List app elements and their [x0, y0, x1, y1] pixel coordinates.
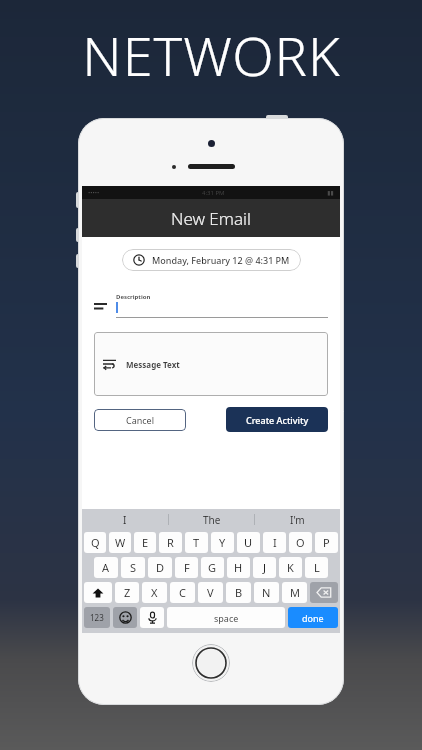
button[interactable]: Message Text	[94, 332, 328, 396]
staticText: S	[130, 560, 137, 575]
staticText: T	[193, 535, 200, 550]
staticText: B	[235, 585, 243, 600]
button[interactable]: C	[170, 582, 195, 603]
button[interactable]: K	[279, 557, 302, 578]
staticText: K	[287, 560, 294, 575]
button[interactable]: Monday, February 12 @ 4:31 PM	[122, 249, 301, 271]
button[interactable]: Y	[211, 532, 234, 553]
staticText: E	[142, 535, 149, 550]
staticText: Z	[124, 585, 131, 600]
button[interactable]: N	[254, 582, 279, 603]
button[interactable]: W	[109, 532, 131, 553]
button[interactable]: Create Activity	[226, 407, 328, 432]
button[interactable]: The	[169, 509, 254, 530]
staticText: U	[244, 535, 253, 550]
staticText: Message Text	[126, 359, 180, 370]
staticText: V	[207, 585, 214, 600]
button[interactable]: G	[201, 557, 224, 578]
staticText: A	[102, 560, 110, 575]
staticText: New Email	[171, 207, 251, 230]
staticText: W	[115, 535, 126, 550]
button[interactable]: Q	[84, 532, 106, 553]
staticText: R	[167, 535, 174, 550]
staticText: 4:31 PM	[202, 189, 225, 197]
staticText: •••••	[88, 189, 100, 197]
button[interactable]: X	[142, 582, 167, 603]
staticText: M	[290, 585, 300, 600]
button[interactable]: I	[263, 532, 286, 553]
staticText: Create Activity	[246, 414, 309, 426]
staticText: H	[234, 560, 243, 575]
button[interactable]: Z	[115, 582, 139, 603]
staticText: P	[323, 535, 330, 550]
button[interactable]: Cancel	[94, 409, 186, 431]
staticText: N	[262, 585, 271, 600]
staticText: I'm	[290, 513, 305, 527]
staticText: X	[151, 585, 158, 600]
button[interactable]: R	[159, 532, 182, 553]
button[interactable]: I'm	[255, 509, 340, 530]
button[interactable]: A	[94, 557, 118, 578]
button[interactable]: J	[253, 557, 276, 578]
button[interactable]: Shift	[84, 582, 112, 603]
button[interactable]: 123	[84, 607, 110, 628]
staticText: NETWORK	[82, 18, 341, 92]
staticText: Monday, February 12 @ 4:31 PM	[152, 254, 290, 266]
button[interactable]: M	[282, 582, 307, 603]
staticText: L	[314, 560, 320, 575]
staticText: I	[123, 513, 127, 527]
button[interactable]: U	[237, 532, 260, 553]
button[interactable]: Backspace	[310, 582, 338, 603]
button[interactable]: B	[226, 582, 251, 603]
staticText: I	[273, 535, 277, 550]
button[interactable]: V	[198, 582, 223, 603]
staticText: Cancel	[126, 414, 155, 426]
staticText: ▮▮	[327, 189, 334, 196]
staticText: space	[214, 612, 239, 624]
staticText: Y	[219, 535, 226, 550]
button[interactable]: done	[288, 607, 338, 628]
staticText: D	[156, 560, 165, 575]
button[interactable]: O	[289, 532, 312, 553]
button[interactable]: space	[167, 607, 285, 628]
staticText: C	[179, 585, 186, 600]
staticText: F	[184, 560, 190, 575]
staticText: 123	[90, 612, 104, 623]
staticText: G	[208, 560, 217, 575]
button[interactable]: F	[175, 557, 198, 578]
button[interactable]: T	[185, 532, 208, 553]
staticText: Description	[116, 293, 151, 301]
button[interactable]: Emoji	[113, 607, 137, 628]
staticText: The	[203, 513, 221, 527]
button[interactable]: Description	[94, 293, 328, 318]
button[interactable]: H	[227, 557, 250, 578]
staticText: Q	[91, 535, 100, 550]
button[interactable]: Dictate	[140, 607, 164, 628]
staticText: J	[263, 560, 267, 575]
staticText: O	[296, 535, 305, 550]
staticText: done	[302, 612, 324, 624]
button[interactable]: P	[315, 532, 338, 553]
button[interactable]: L	[305, 557, 328, 578]
button[interactable]: D	[148, 557, 172, 578]
button[interactable]: E	[134, 532, 156, 553]
button[interactable]: I	[82, 509, 168, 530]
button[interactable]: S	[121, 557, 145, 578]
